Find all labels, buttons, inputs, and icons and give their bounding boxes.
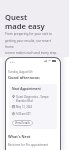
button[interactable]: Next Appointment — [9, 84, 57, 129]
staticText: Good afternoon — [8, 75, 40, 81]
staticText: Quest Diagnostics - Tampa Brandon Blvd — [16, 95, 49, 102]
staticText: May 13, 2024 — [16, 105, 33, 109]
staticText: What's Next — [8, 134, 31, 139]
button[interactable]: View Details — [12, 120, 33, 126]
staticText: Next Appointment — [12, 87, 41, 91]
staticText: Best time for Pre-appointment — [8, 143, 49, 147]
staticText: 9:00 am EST — [16, 112, 31, 116]
staticText: From preparing for your visit to getting… — [5, 32, 57, 55]
staticText: Tuesday, August 6th — [8, 70, 33, 74]
staticText: 9:41 — [10, 60, 15, 63]
staticText: Quest made easy — [5, 12, 45, 31]
staticText: View Details — [15, 121, 30, 125]
